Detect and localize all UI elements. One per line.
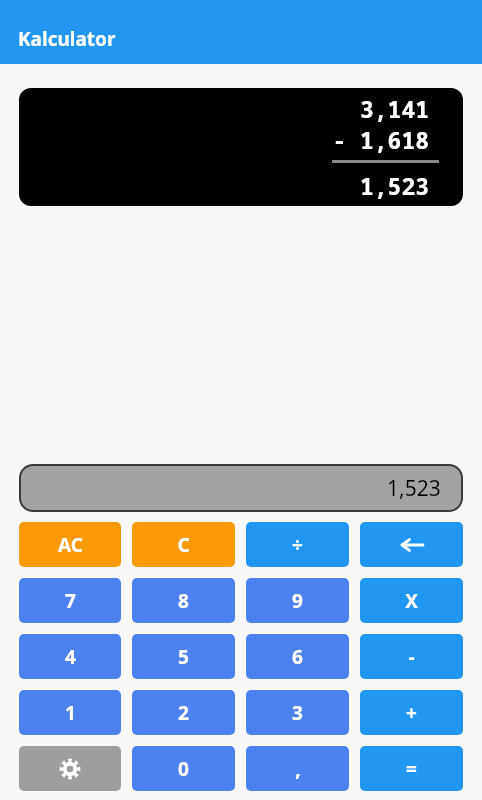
staticText: 0: [178, 756, 189, 782]
staticText: X: [405, 588, 418, 614]
button[interactable]: ÷: [246, 522, 349, 567]
staticText: -: [408, 644, 415, 670]
button[interactable]: C: [132, 522, 235, 567]
staticText: Kalculator: [18, 26, 116, 52]
button[interactable]: ,: [246, 746, 349, 791]
button[interactable]: +: [360, 690, 463, 735]
staticText: 5: [178, 644, 189, 670]
staticText: ,: [295, 756, 301, 782]
staticText: 1: [65, 700, 76, 726]
staticText: C: [177, 532, 190, 558]
button[interactable]: -: [360, 634, 463, 679]
staticText: +: [406, 700, 417, 726]
button[interactable]: 0: [132, 746, 235, 791]
staticText: 4: [65, 644, 76, 670]
button[interactable]: X: [360, 578, 463, 623]
staticText: - 1,618: [332, 124, 429, 155]
button[interactable]: 2: [132, 690, 235, 735]
button[interactable]: Settings: [19, 746, 121, 791]
button[interactable]: 3: [246, 690, 349, 735]
button[interactable]: 7: [19, 578, 121, 623]
button[interactable]: 8: [132, 578, 235, 623]
staticText: 6: [292, 644, 303, 670]
staticText: ÷: [292, 532, 303, 558]
button[interactable]: 4: [19, 634, 121, 679]
staticText: 9: [292, 588, 303, 614]
button[interactable]: =: [360, 746, 463, 791]
button[interactable]: 1,523: [19, 464, 463, 512]
button[interactable]: Backspace: [360, 522, 463, 567]
staticText: 7: [65, 588, 76, 614]
staticText: 1,523: [387, 474, 441, 503]
staticText: =: [406, 756, 417, 782]
staticText: 8: [178, 588, 189, 614]
button[interactable]: 6: [246, 634, 349, 679]
button[interactable]: 1: [19, 690, 121, 735]
staticText: 1,523: [332, 170, 429, 201]
button[interactable]: AC: [19, 522, 121, 567]
staticText: AC: [58, 532, 83, 558]
staticText: 2: [178, 700, 189, 726]
button[interactable]: 5: [132, 634, 235, 679]
button[interactable]: 9: [246, 578, 349, 623]
staticText: 3: [292, 700, 303, 726]
staticText: 3,141: [332, 93, 429, 124]
